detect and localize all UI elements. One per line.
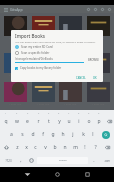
staticText: 4 — [38, 112, 40, 115]
button[interactable]: g — [48, 128, 58, 141]
button[interactable]: BROWSE — [87, 57, 100, 63]
button[interactable]: j — [68, 128, 78, 141]
button[interactable]: Home — [51, 168, 64, 181]
staticText: m — [73, 144, 78, 151]
staticText: 1 — [5, 112, 7, 115]
button[interactable]: Scan my entire SD Card — [15, 44, 53, 50]
button[interactable]: CANCEL — [74, 75, 88, 81]
button[interactable]: c — [31, 141, 40, 154]
staticText: 0 — [98, 112, 100, 115]
staticText: s — [21, 131, 24, 138]
button[interactable]: p — [94, 115, 104, 128]
button[interactable]: n — [60, 141, 70, 154]
button[interactable]: Action — [99, 6, 106, 13]
staticText: Import Books — [15, 33, 45, 39]
button[interactable]: b — [50, 141, 60, 154]
button[interactable]: Back — [21, 168, 34, 181]
staticText: 2 — [16, 112, 18, 115]
button[interactable] — [59, 16, 82, 36]
button[interactable]: Action — [92, 6, 99, 13]
button[interactable]: Recents — [81, 168, 94, 181]
button[interactable]: e — [22, 115, 33, 128]
button[interactable] — [4, 82, 27, 102]
button[interactable]: Copy books to my library folder — [15, 66, 62, 70]
button[interactable]: z — [13, 141, 22, 154]
button[interactable]: Action — [106, 6, 113, 13]
button[interactable]: . — [89, 154, 99, 167]
button[interactable]: ! — [80, 141, 90, 154]
button[interactable]: m — [70, 141, 80, 154]
staticText: y — [58, 118, 61, 125]
staticText: BROWSE — [88, 58, 99, 62]
button[interactable]: Scan a specific folder — [15, 50, 50, 56]
staticText: k — [82, 131, 85, 138]
staticText: . — [93, 157, 95, 164]
button[interactable]: o — [84, 115, 94, 128]
staticText: t — [48, 118, 50, 125]
button[interactable]: English — [37, 157, 88, 164]
staticText: i — [78, 118, 80, 125]
button[interactable]: , — [16, 154, 26, 167]
button[interactable]: w — [11, 115, 22, 128]
button[interactable]: Emoji — [26, 154, 36, 167]
button[interactable]: l — [88, 128, 98, 141]
staticText: A Book Title — [92, 37, 105, 40]
staticText: ! — [84, 144, 86, 151]
button[interactable] — [87, 16, 110, 36]
button[interactable]: q — [0, 115, 11, 128]
button[interactable]: Menu — [3, 7, 8, 12]
button[interactable]: .com — [99, 154, 114, 167]
staticText: v — [44, 144, 47, 151]
button[interactable] — [59, 82, 82, 102]
button[interactable]: a — [6, 128, 17, 141]
button[interactable]: Backspace — [104, 115, 114, 128]
button[interactable]: x — [22, 141, 31, 154]
button[interactable]: r — [33, 115, 44, 128]
button[interactable]: i — [74, 115, 84, 128]
staticText: 7 — [68, 112, 70, 115]
button[interactable]: f — [38, 128, 48, 141]
button[interactable] — [4, 16, 27, 36]
button[interactable]: ?123 — [0, 154, 16, 167]
staticText: GitsApp — [10, 7, 23, 12]
staticText: z — [16, 144, 19, 151]
staticText: /storage/emulated/0/eBooks — [15, 57, 53, 61]
button[interactable]: Shift — [0, 141, 13, 154]
button[interactable] — [87, 53, 110, 73]
button[interactable]: Backspace — [100, 141, 114, 154]
staticText: o — [87, 118, 91, 125]
staticText: 3 — [27, 112, 29, 115]
button[interactable]: u — [64, 115, 74, 128]
staticText: l — [92, 131, 94, 138]
staticText: You can either scan your entire SD Card,… — [15, 40, 96, 43]
button[interactable]: OK — [91, 75, 99, 81]
staticText: A Book Title — [9, 74, 22, 77]
staticText: A Book Title — [9, 37, 22, 40]
button[interactable]: d — [28, 128, 38, 141]
button[interactable] — [4, 53, 27, 73]
button[interactable] — [32, 82, 55, 102]
staticText: x — [25, 144, 28, 151]
staticText: u — [67, 118, 71, 125]
button[interactable] — [32, 16, 55, 36]
button[interactable]: Action — [85, 6, 92, 13]
button[interactable]: ? — [90, 141, 100, 154]
button[interactable] — [87, 82, 110, 102]
button[interactable] — [32, 53, 55, 73]
staticText: h — [61, 131, 65, 138]
button[interactable]: k — [78, 128, 88, 141]
button[interactable] — [59, 53, 82, 73]
button[interactable]: Search — [102, 131, 110, 139]
staticText: CANCEL — [76, 76, 86, 80]
staticText: 6 — [58, 112, 60, 115]
staticText: Scan a specific folder — [21, 51, 50, 55]
button[interactable]: y — [54, 115, 64, 128]
button[interactable]: h — [58, 128, 68, 141]
button[interactable]: s — [17, 128, 28, 141]
button[interactable]: v — [40, 141, 50, 154]
button[interactable]: t — [44, 115, 54, 128]
